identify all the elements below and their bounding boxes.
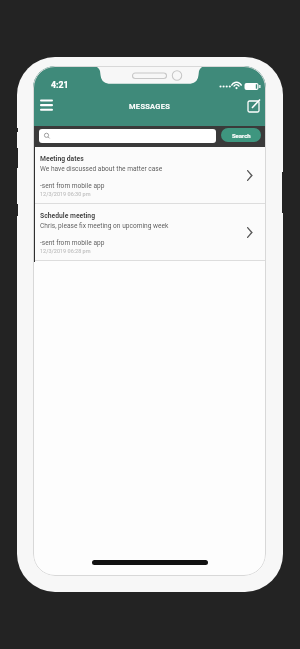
staticText: MESSAGES: [129, 102, 171, 111]
staticText: -sent from mobile app: [40, 182, 105, 190]
staticText: 12/3/2019 06:30 pm: [40, 191, 91, 197]
staticText: 4:21: [51, 80, 69, 90]
button[interactable]: Search: [221, 128, 261, 142]
staticText: We have discussed about the matter case: [40, 165, 163, 173]
button[interactable]: [39, 129, 216, 143]
staticText: Schedule meeting: [40, 212, 96, 220]
button[interactable]: [240, 94, 266, 120]
button[interactable]: Schedule meeting: [33, 204, 266, 260]
staticText: Meeting dates: [40, 155, 84, 163]
button[interactable]: Meeting dates: [33, 147, 266, 203]
staticText: -sent from mobile app: [40, 239, 105, 247]
staticText: Chris, please fix meeting on upcoming we…: [40, 222, 169, 230]
button[interactable]: [34, 94, 60, 120]
staticText: Search: [232, 132, 251, 139]
staticText: 12/3/2019 06:28 pm: [40, 248, 91, 254]
